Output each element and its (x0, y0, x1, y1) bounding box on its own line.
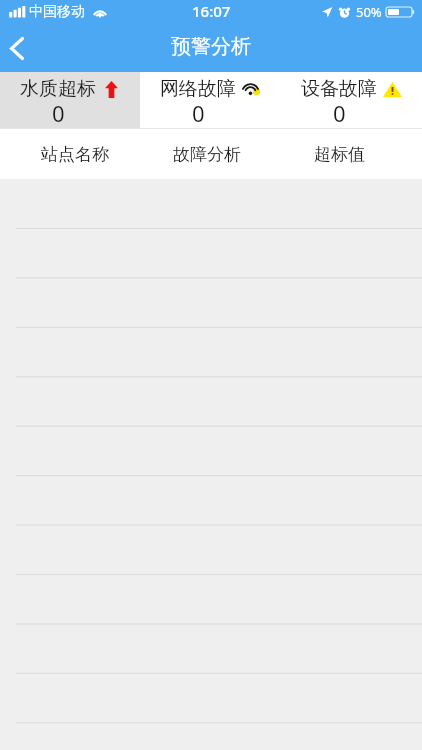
staticText: 16:07 (192, 1, 231, 21)
button[interactable]: 设备故障 (281, 72, 422, 128)
staticText: 0 (333, 98, 346, 128)
staticText: 0 (52, 98, 65, 128)
button[interactable]: 水质超标 (0, 72, 140, 128)
staticText: 50% (356, 3, 382, 21)
staticText: 预警分析 (171, 34, 251, 59)
staticText: 故障分析 (173, 144, 241, 165)
button[interactable]: 网络故障 (140, 72, 281, 128)
staticText: 设备故障 (301, 77, 377, 101)
staticText: 水质超标 (20, 77, 96, 101)
staticText: 中国移动 (29, 3, 85, 21)
staticText: 网络故障 (160, 77, 236, 101)
staticText: 站点名称 (41, 144, 109, 165)
staticText: 0 (192, 98, 205, 128)
button[interactable]: Back (0, 24, 42, 72)
staticText: 超标值 (314, 144, 365, 165)
